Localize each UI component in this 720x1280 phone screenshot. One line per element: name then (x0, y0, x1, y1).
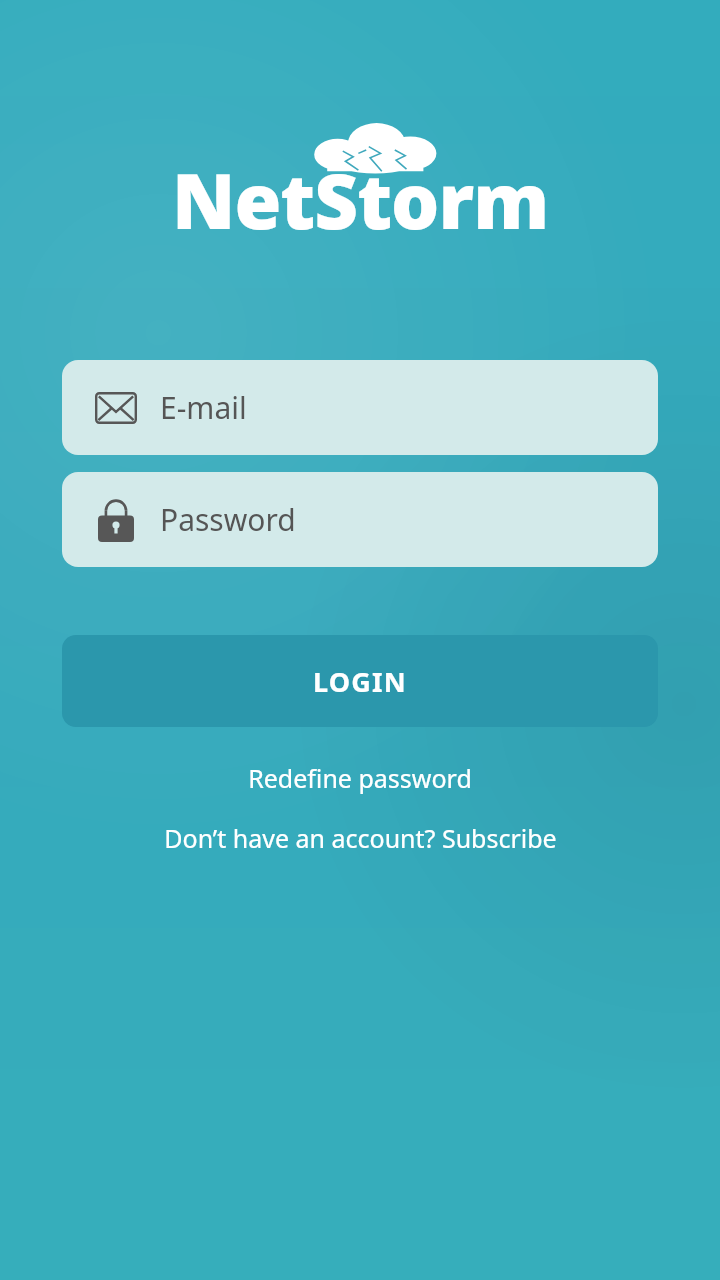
button[interactable]: LOGIN (62, 635, 658, 727)
staticText: E-mail (160, 387, 247, 428)
button[interactable]: Don’t have an account? Subscribe (140, 813, 581, 863)
button[interactable]: E-mail (62, 360, 658, 455)
button[interactable]: Password (62, 472, 658, 567)
staticText: Password (160, 499, 296, 540)
button[interactable]: Redefine password (224, 753, 496, 803)
staticText: LOGIN (313, 663, 407, 700)
staticText: NetStorm (172, 148, 549, 252)
staticText: Redefine password (248, 761, 472, 795)
staticText: Don’t have an account? Subscribe (164, 821, 557, 855)
